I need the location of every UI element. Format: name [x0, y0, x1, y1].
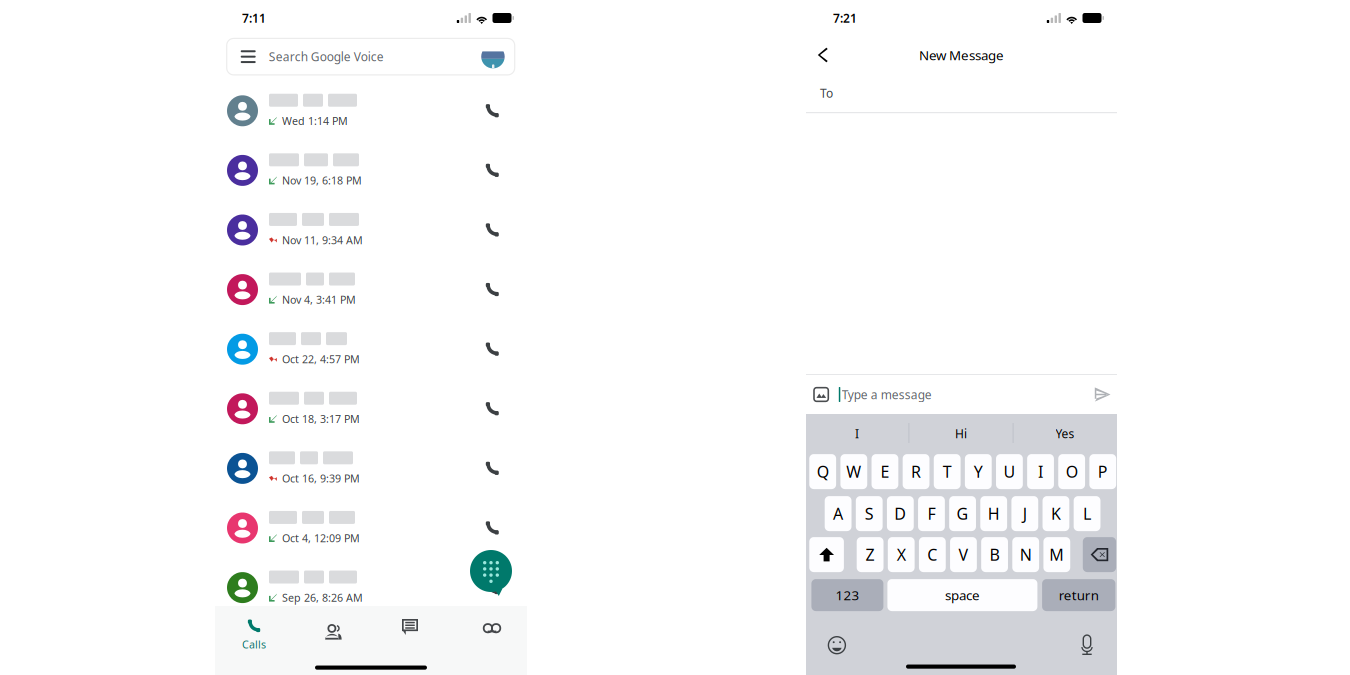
button[interactable]: Voicemail — [449, 610, 527, 652]
button[interactable]: Delete — [1083, 537, 1116, 572]
staticText: New Message — [919, 46, 1004, 64]
staticText: Oct 18, 3:17 PM — [282, 412, 360, 426]
staticText: Yes — [1055, 425, 1074, 441]
staticText: space — [945, 586, 980, 604]
button[interactable]: Shift — [809, 537, 844, 572]
button[interactable]: C — [919, 537, 946, 572]
staticText: 7:21 — [833, 10, 857, 26]
staticText: 7:11 — [242, 10, 266, 26]
button[interactable]: M — [1043, 537, 1070, 572]
staticText: C — [927, 544, 937, 565]
button[interactable]: Nov 11, 9:34 AM — [215, 200, 527, 260]
staticText: Nov 4, 3:41 PM — [282, 292, 356, 307]
staticText: J — [1023, 503, 1027, 524]
button[interactable]: Oct 22, 4:57 PM — [215, 319, 527, 379]
button[interactable]: Oct 18, 3:17 PM — [215, 379, 527, 439]
staticText: X — [897, 544, 906, 565]
button[interactable]: Q — [809, 454, 836, 489]
button[interactable]: Nov 4, 3:41 PM — [215, 260, 527, 319]
staticText: K — [1051, 503, 1061, 524]
button[interactable]: Emoji — [827, 636, 846, 655]
staticText: N — [1020, 544, 1032, 565]
staticText: Search Google Voice — [269, 49, 384, 65]
button[interactable]: return — [1042, 579, 1115, 611]
button[interactable]: D — [887, 496, 914, 531]
staticText: H — [988, 503, 1000, 524]
button[interactable]: Oct 16, 9:39 PM — [215, 439, 527, 498]
button[interactable]: S — [856, 496, 883, 531]
staticText: V — [958, 544, 968, 565]
staticText: A — [833, 503, 843, 524]
button[interactable]: N — [1012, 537, 1039, 572]
button[interactable]: I — [1027, 454, 1054, 489]
button[interactable]: T — [934, 454, 961, 489]
staticText: return — [1059, 586, 1099, 604]
button[interactable]: B — [981, 537, 1008, 572]
staticText: I — [855, 425, 859, 441]
button[interactable]: L — [1074, 496, 1100, 531]
button[interactable]: V — [950, 537, 977, 572]
staticText: Sep 26, 8:26 AM — [282, 590, 363, 605]
button[interactable]: Contacts — [293, 610, 371, 652]
staticText: S — [865, 503, 874, 524]
button[interactable]: W — [840, 454, 867, 489]
button[interactable]: Search Google Voice — [227, 38, 515, 75]
button[interactable]: F — [918, 496, 945, 531]
staticText: Q — [817, 461, 829, 482]
button[interactable]: J — [1011, 496, 1038, 531]
staticText: P — [1098, 461, 1108, 482]
staticText: F — [927, 503, 935, 524]
button[interactable]: space — [887, 579, 1037, 611]
button[interactable]: Oct 4, 12:09 PM — [215, 498, 527, 558]
button[interactable]: Y — [965, 454, 992, 489]
staticText: U — [1003, 461, 1015, 482]
staticText: W — [846, 461, 861, 482]
button[interactable]: E — [871, 454, 898, 489]
button[interactable]: P — [1089, 454, 1116, 489]
staticText: Oct 16, 9:39 PM — [282, 471, 360, 485]
button[interactable]: Wed 1:14 PM — [215, 81, 527, 141]
button[interactable]: Messages — [371, 610, 449, 652]
staticText: 123 — [835, 586, 859, 604]
staticText: E — [880, 461, 889, 482]
staticText: I — [1038, 461, 1043, 482]
button[interactable]: Attach image — [806, 378, 839, 411]
button[interactable]: Hi — [909, 414, 1013, 452]
button[interactable]: H — [980, 496, 1007, 531]
staticText: O — [1066, 461, 1078, 482]
button[interactable]: 123 — [811, 579, 883, 611]
staticText: Z — [866, 544, 875, 565]
staticText: D — [894, 503, 906, 524]
staticText: Hi — [955, 425, 967, 441]
staticText: Calls — [242, 637, 266, 651]
staticText: Nov 11, 9:34 AM — [282, 233, 363, 247]
button[interactable]: O — [1058, 454, 1085, 489]
button[interactable]: R — [903, 454, 929, 489]
button[interactable]: U — [996, 454, 1023, 489]
staticText: T — [943, 461, 952, 482]
staticText: Type a message — [842, 386, 932, 402]
button[interactable]: Calls — [215, 610, 293, 652]
staticText: Oct 22, 4:57 PM — [282, 352, 360, 366]
staticText: M — [1049, 544, 1064, 565]
button[interactable]: X — [888, 537, 915, 572]
staticText: Nov 19, 6:18 PM — [282, 173, 362, 187]
button[interactable]: A — [825, 496, 851, 531]
button[interactable]: Sep 26, 8:26 AM — [215, 558, 527, 617]
staticText: B — [990, 544, 1000, 565]
staticText: Wed 1:14 PM — [282, 114, 348, 128]
button[interactable]: Dialpad — [470, 550, 512, 592]
button[interactable]: I — [806, 414, 908, 452]
button[interactable]: Z — [857, 537, 883, 572]
button[interactable]: Dictate — [1081, 634, 1093, 655]
staticText: R — [911, 461, 921, 482]
staticText: L — [1083, 503, 1091, 524]
staticText: To — [820, 85, 833, 101]
button[interactable]: Send — [1095, 377, 1117, 412]
staticText: Oct 4, 12:09 PM — [282, 531, 360, 545]
button[interactable]: K — [1042, 496, 1069, 531]
button[interactable]: Back — [806, 37, 842, 73]
button[interactable]: Yes — [1013, 414, 1117, 452]
button[interactable]: Nov 19, 6:18 PM — [215, 141, 527, 200]
button[interactable]: G — [949, 496, 976, 531]
